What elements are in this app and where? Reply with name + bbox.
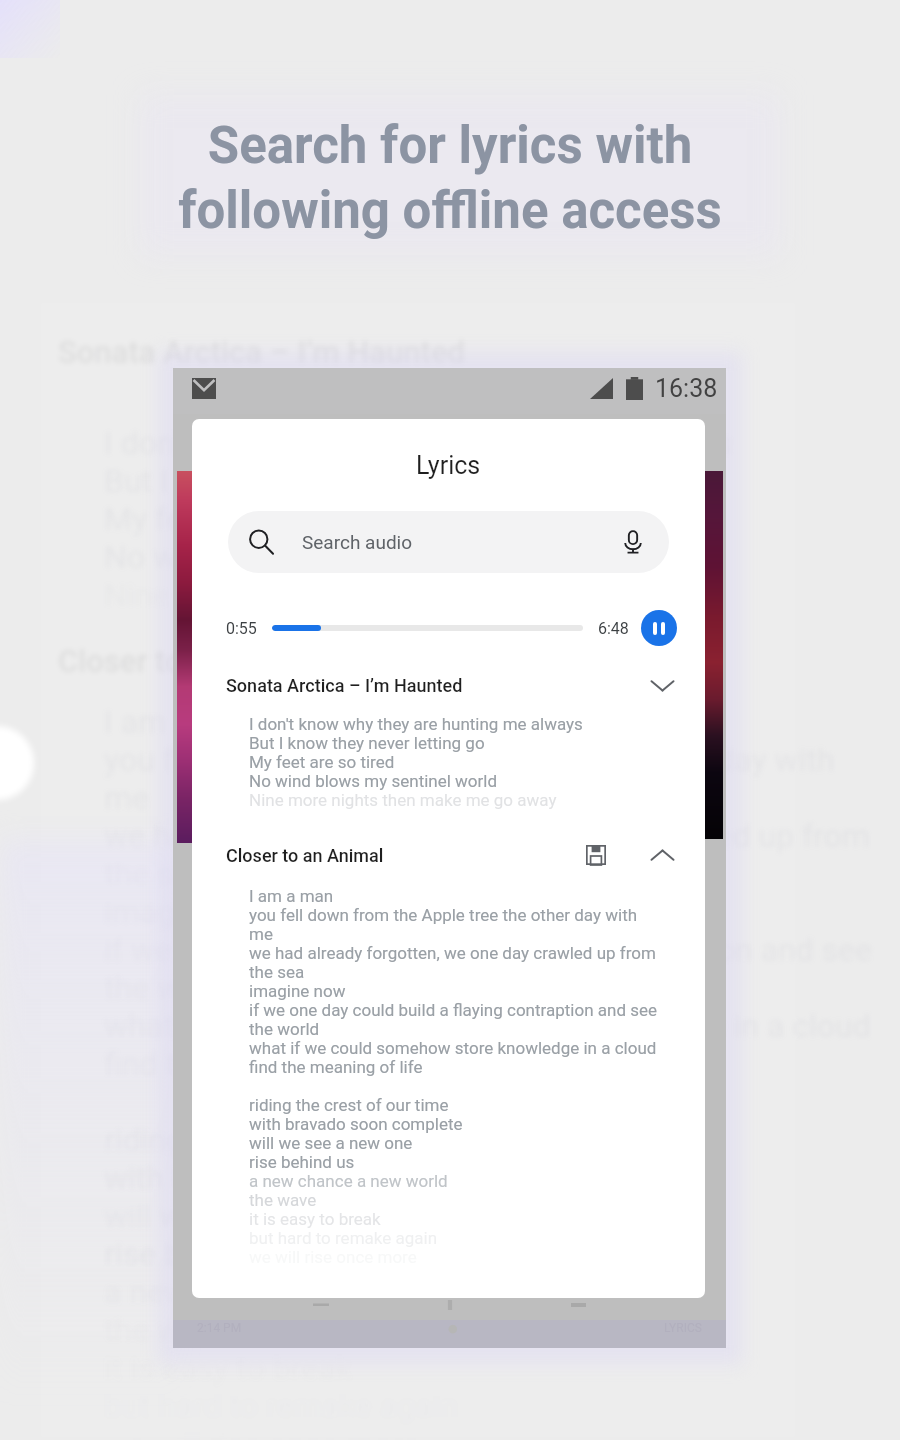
staticText: the wave — [249, 1190, 317, 1209]
staticText: No wind blows my sentinel world — [104, 538, 571, 576]
staticText: I don't know why they are hunting me alw… — [104, 424, 733, 462]
staticText: But I know they never letting go — [104, 462, 548, 500]
staticText: Closer to an Animal — [226, 845, 384, 866]
staticText: No wind blows my sentinel world — [249, 771, 498, 790]
staticText: find the meaning of life — [249, 1057, 423, 1076]
staticText: the world — [104, 969, 236, 1007]
staticText: Nine more nights then make me go away — [104, 576, 683, 614]
staticText: ● — [448, 1322, 458, 1335]
staticText: a new chance a new world — [249, 1171, 448, 1190]
staticText: rise behind us — [249, 1152, 355, 1171]
staticText: a new chance a new world — [104, 1273, 479, 1311]
staticText: the sea — [104, 855, 208, 893]
button[interactable]: Pause — [641, 610, 677, 646]
staticText: we had already forgotten, we one day cra… — [249, 943, 656, 962]
staticText: Closer to an Animal — [58, 643, 329, 679]
staticText: My feet are so tired — [249, 752, 395, 771]
staticText: Lyrics — [416, 451, 481, 480]
button[interactable]: Voice search — [617, 526, 649, 558]
staticText: what if we could somehow store knowledge… — [249, 1038, 657, 1057]
staticText: imagine now — [249, 981, 346, 1000]
staticText: 0:55 — [226, 619, 257, 638]
staticText: imagine now — [104, 893, 286, 931]
staticText: But I know they never letting go — [249, 733, 485, 752]
button[interactable]: Expand — [645, 668, 679, 702]
staticText: the world — [249, 1019, 320, 1038]
staticText: what if we could somehow store knowledge… — [104, 1007, 871, 1045]
staticText: I don't know why they are hunting me alw… — [249, 714, 583, 733]
staticText: Nine more nights then make me go away — [249, 790, 557, 809]
staticText: if we one day could build a flaying cont… — [249, 1000, 658, 1019]
staticText: it is easy to break — [249, 1209, 381, 1228]
staticText: Sonata Arctica – I’m Haunted — [226, 675, 463, 696]
staticText: me — [249, 924, 273, 943]
button[interactable]: Collapse — [645, 838, 679, 872]
staticText: rise behind us — [104, 1235, 303, 1273]
button[interactable]: Save — [583, 842, 609, 868]
staticText: you fell down from the Apple tree the ot… — [249, 905, 638, 924]
staticText: the wave — [104, 1311, 231, 1349]
staticText: the sea — [249, 962, 305, 981]
button[interactable]: Closer to an Animal — [192, 835, 705, 875]
staticText: My feet are so tired — [104, 500, 378, 538]
button[interactable]: Sonata Arctica – I’m Haunted — [192, 665, 705, 705]
staticText: find the meaning of life — [104, 1045, 431, 1083]
staticText: if we one day could build a flaying cont… — [104, 931, 873, 969]
staticText: 16:38 — [655, 374, 718, 403]
staticText: 6:48 — [598, 619, 629, 638]
staticText: Search audio — [302, 531, 413, 553]
staticText: I am a man — [249, 886, 334, 905]
staticText: you fell down from the Apple tree the ot… — [104, 741, 835, 779]
staticText: Sonata Arctica – I’m Haunted — [58, 334, 466, 370]
staticText: with bravado soon complete — [104, 1159, 506, 1197]
staticText: Search for lyrics with following offline… — [178, 116, 722, 240]
staticText: will we see a new one — [249, 1133, 413, 1152]
button[interactable]: Search audio — [228, 511, 669, 573]
staticText: I am a man — [104, 703, 263, 741]
staticText: riding the crest of our time — [249, 1095, 449, 1114]
staticText: we had already forgotten, we one day cra… — [104, 817, 870, 855]
staticText: it is easy to break — [104, 1349, 352, 1387]
staticText: with bravado soon complete — [249, 1114, 463, 1133]
staticText: but hard to remake again — [249, 1228, 438, 1247]
staticText: riding the crest of our time — [104, 1121, 480, 1159]
staticText: will we see a new one — [104, 1197, 412, 1235]
